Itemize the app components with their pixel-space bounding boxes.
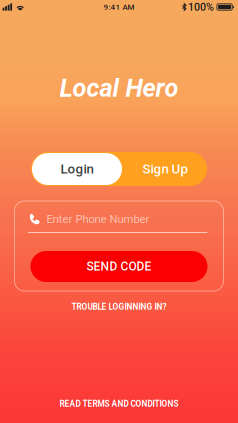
staticText: 9:41 AM — [103, 2, 134, 12]
staticText: TROUBLE LOGINNING IN? — [71, 302, 166, 312]
button[interactable]: Sign Up — [123, 152, 207, 186]
staticText: Local Hero — [59, 73, 178, 103]
button[interactable]: READ TERMS AND CONDITIONS — [53, 397, 184, 411]
staticText: READ TERMS AND CONDITIONS — [59, 399, 178, 409]
button[interactable]: SEND CODE — [30, 251, 207, 282]
staticText: 100% — [188, 1, 214, 13]
staticText: SEND CODE — [86, 259, 151, 274]
staticText: Enter Phone Number — [46, 212, 149, 226]
button[interactable]: Login — [32, 153, 122, 185]
staticText: Sign Up — [142, 161, 187, 177]
staticText: Login — [60, 161, 93, 177]
button[interactable]: TROUBLE LOGINNING IN? — [65, 300, 172, 314]
